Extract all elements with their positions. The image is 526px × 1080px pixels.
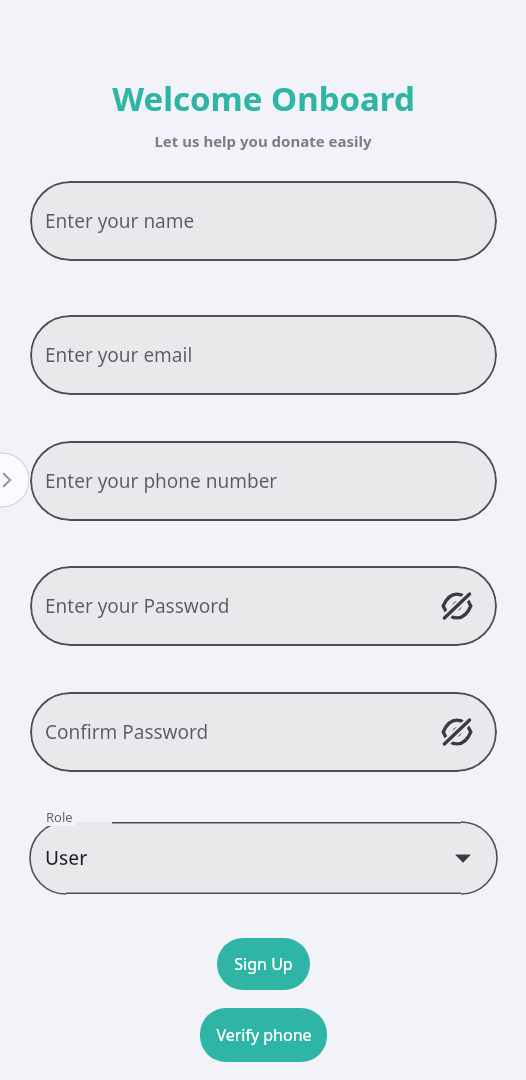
button[interactable]: Enter your Password: [30, 566, 497, 646]
staticText: Sign Up: [234, 953, 293, 975]
button[interactable]: Enter your phone number: [30, 441, 497, 521]
button[interactable]: Enter your name: [30, 181, 497, 261]
staticText: Welcome Onboard: [112, 76, 415, 121]
staticText: Enter your name: [45, 208, 195, 234]
button[interactable]: Open role dropdown: [449, 844, 477, 872]
button[interactable]: User: [30, 822, 497, 894]
staticText: Role: [46, 808, 73, 826]
button[interactable]: Verify phone: [200, 1008, 327, 1062]
staticText: Verify phone: [216, 1024, 312, 1046]
button[interactable]: Confirm Password: [30, 692, 497, 772]
button[interactable]: Sign Up: [217, 938, 310, 990]
staticText: Enter your phone number: [45, 468, 278, 494]
button[interactable]: Open navigation drawer: [0, 452, 30, 508]
button[interactable]: Enter your email: [30, 315, 497, 395]
button[interactable]: Toggle password visibility: [437, 586, 477, 626]
staticText: Let us help you donate easily: [154, 131, 372, 151]
staticText: User: [45, 845, 88, 871]
staticText: Enter your email: [45, 342, 193, 368]
staticText: Enter your Password: [45, 593, 230, 619]
button[interactable]: Toggle password visibility: [437, 712, 477, 752]
staticText: Confirm Password: [45, 719, 209, 745]
